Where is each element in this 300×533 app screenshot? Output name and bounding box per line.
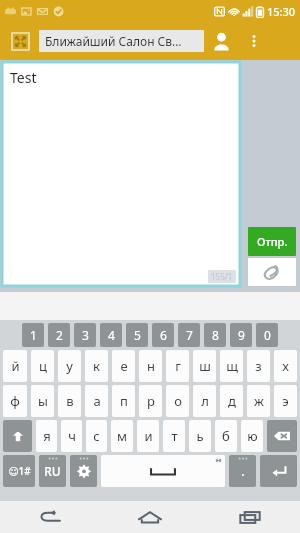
button[interactable]: Ближайший Салон Св… bbox=[39, 30, 204, 52]
button[interactable]: 8 bbox=[204, 323, 226, 347]
staticText: 5 bbox=[134, 327, 141, 343]
button[interactable]: д bbox=[220, 385, 243, 417]
button[interactable]: у bbox=[58, 350, 81, 382]
button[interactable]: к bbox=[85, 350, 108, 382]
button[interactable]: л bbox=[193, 385, 216, 417]
button[interactable]: ☺1# bbox=[3, 455, 35, 487]
button[interactable]: з bbox=[247, 350, 270, 382]
button[interactable]: ь bbox=[189, 420, 211, 452]
button[interactable]: ж bbox=[247, 385, 270, 417]
staticText: с bbox=[93, 427, 100, 445]
button[interactable]: м bbox=[111, 420, 133, 452]
button[interactable]: в bbox=[58, 385, 81, 417]
button[interactable]: а bbox=[85, 385, 108, 417]
staticText: ю bbox=[247, 427, 258, 445]
button[interactable]: 6 bbox=[152, 323, 174, 347]
staticText: Отпр. bbox=[257, 234, 288, 249]
staticText: ц bbox=[39, 357, 47, 375]
staticText: ф bbox=[10, 392, 20, 410]
staticText: а bbox=[93, 392, 101, 410]
button[interactable]: р bbox=[139, 385, 162, 417]
button[interactable]: Back bbox=[0, 501, 100, 533]
staticText: п bbox=[120, 392, 128, 410]
staticText: л bbox=[201, 392, 209, 410]
button[interactable]: 2 bbox=[48, 323, 70, 347]
button[interactable]: 0 bbox=[256, 323, 278, 347]
staticText: б bbox=[222, 427, 230, 445]
staticText: 15:30 bbox=[267, 4, 296, 19]
staticText: 0 bbox=[264, 327, 271, 343]
staticText: ч bbox=[68, 427, 76, 445]
staticText: у bbox=[66, 357, 73, 375]
button[interactable]: ы bbox=[31, 385, 54, 417]
staticText: 8 bbox=[212, 327, 219, 343]
button[interactable]: х bbox=[274, 350, 297, 382]
button[interactable]: Backspace bbox=[267, 420, 297, 452]
button[interactable]: и bbox=[137, 420, 159, 452]
button[interactable]: 9 bbox=[230, 323, 252, 347]
button[interactable]: Test bbox=[2, 62, 240, 286]
button[interactable]: 1 bbox=[22, 323, 44, 347]
staticText: ☺1# bbox=[8, 464, 31, 478]
staticText: ш bbox=[199, 357, 211, 375]
staticText: 4 bbox=[108, 327, 115, 343]
button[interactable]: Attach bbox=[248, 258, 296, 286]
button[interactable]: Collapse bbox=[10, 31, 30, 51]
button[interactable]: Recents bbox=[200, 501, 300, 533]
staticText: Test bbox=[10, 68, 37, 87]
button[interactable]: More options bbox=[239, 26, 269, 56]
staticText: м bbox=[117, 427, 127, 445]
staticText: 1 bbox=[30, 327, 37, 343]
button[interactable]: Home bbox=[100, 501, 200, 533]
button[interactable]: Keyboard settings bbox=[70, 455, 97, 487]
button[interactable]: . bbox=[229, 455, 256, 487]
button[interactable]: 3 bbox=[74, 323, 96, 347]
button[interactable]: п bbox=[112, 385, 135, 417]
button[interactable]: Shift bbox=[3, 420, 32, 452]
staticText: в bbox=[66, 392, 74, 410]
staticText: 3 bbox=[82, 327, 89, 343]
button[interactable]: Contacts bbox=[204, 24, 238, 58]
button[interactable]: э bbox=[274, 385, 297, 417]
staticText: я bbox=[43, 427, 51, 445]
button[interactable]: е bbox=[112, 350, 135, 382]
button[interactable]: RU bbox=[39, 455, 66, 487]
button[interactable]: Enter bbox=[260, 455, 297, 487]
button[interactable]: т bbox=[163, 420, 185, 452]
button[interactable]: щ bbox=[220, 350, 243, 382]
button[interactable]: ш bbox=[193, 350, 216, 382]
staticText: э bbox=[282, 392, 289, 410]
staticText: и bbox=[144, 427, 153, 445]
button[interactable]: ф bbox=[3, 385, 27, 417]
button[interactable]: б bbox=[215, 420, 237, 452]
button[interactable]: 5 bbox=[126, 323, 148, 347]
button[interactable]: ч bbox=[61, 420, 82, 452]
staticText: к bbox=[93, 357, 100, 375]
button[interactable]: 7 bbox=[178, 323, 200, 347]
staticText: 7 bbox=[186, 327, 193, 343]
staticText: д bbox=[228, 392, 236, 410]
button[interactable]: я bbox=[36, 420, 57, 452]
button[interactable]: о bbox=[166, 385, 189, 417]
staticText: 155/1 bbox=[211, 271, 233, 282]
staticText: 2 bbox=[56, 327, 63, 343]
button[interactable]: ю bbox=[241, 420, 263, 452]
staticText: ж bbox=[254, 392, 264, 410]
button[interactable]: ц bbox=[31, 350, 54, 382]
button[interactable]: н bbox=[139, 350, 162, 382]
staticText: х bbox=[282, 357, 289, 375]
staticText: . bbox=[241, 463, 245, 479]
button[interactable]: 4 bbox=[100, 323, 122, 347]
button[interactable]: г bbox=[166, 350, 189, 382]
button[interactable]: Space bbox=[101, 455, 225, 487]
button[interactable]: Отпр. bbox=[248, 227, 296, 256]
staticText: р bbox=[147, 392, 155, 410]
staticText: е bbox=[120, 357, 128, 375]
staticText: ь bbox=[196, 427, 204, 445]
staticText: 6 bbox=[160, 327, 167, 343]
button[interactable]: й bbox=[3, 350, 27, 382]
staticText: о bbox=[174, 392, 182, 410]
staticText: н bbox=[147, 357, 155, 375]
button[interactable]: с bbox=[86, 420, 107, 452]
staticText: ы bbox=[38, 392, 48, 410]
